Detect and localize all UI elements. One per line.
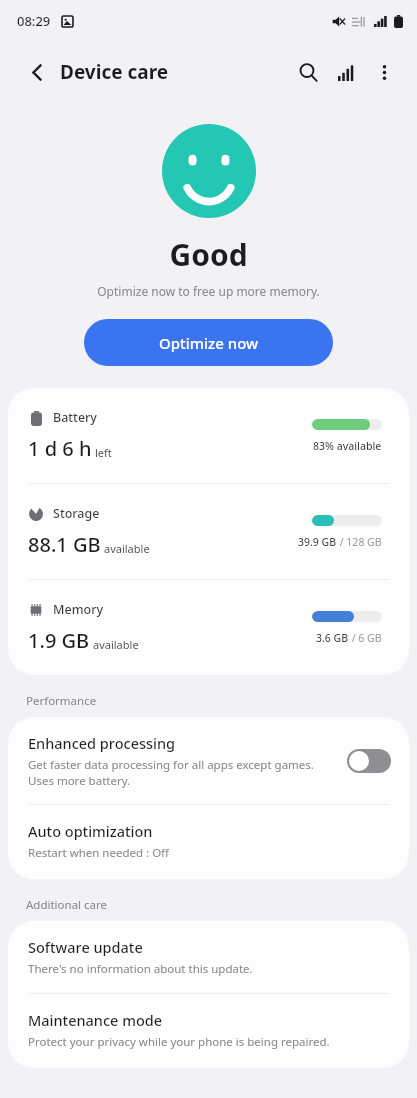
staticText: Maintenance mode xyxy=(28,1010,163,1030)
staticText: Enhanced processing xyxy=(28,733,176,753)
staticText: 83% available xyxy=(313,439,382,453)
staticText: Optimize now to free up more memory. xyxy=(97,283,320,299)
staticText: 88.1 GB xyxy=(28,531,101,558)
button[interactable]: Auto optimization xyxy=(8,805,409,879)
staticText: / 6 GB xyxy=(349,631,382,645)
staticText: 1.9 GB xyxy=(28,627,90,654)
staticText: Battery xyxy=(53,409,97,426)
staticText: left xyxy=(95,445,112,460)
staticText: 39.9 GB xyxy=(298,535,337,549)
button[interactable]: Battery xyxy=(8,388,409,483)
button[interactable]: Back xyxy=(20,55,54,89)
staticText: Memory xyxy=(53,601,104,618)
staticText: available xyxy=(93,637,139,652)
staticText: 3.6 GB xyxy=(316,631,349,645)
button[interactable]: Enhanced processing toggle xyxy=(347,749,391,773)
button[interactable]: Storage xyxy=(8,484,409,579)
staticText: / 128 GB xyxy=(337,535,382,549)
staticText: Storage xyxy=(53,505,100,522)
staticText: Device care xyxy=(60,59,169,85)
button[interactable]: Maintenance mode xyxy=(8,994,409,1068)
staticText: Additional care xyxy=(26,897,108,913)
button[interactable]: Usage statistics xyxy=(327,53,365,91)
staticText: Good xyxy=(169,234,248,275)
button[interactable]: Search xyxy=(289,53,327,91)
button[interactable]: Memory xyxy=(8,580,409,675)
staticText: Get faster data processing for all apps … xyxy=(28,757,314,788)
button[interactable]: Enhanced processing xyxy=(8,717,409,804)
staticText: Restart when needed : Off xyxy=(28,845,170,861)
button[interactable]: Software update xyxy=(8,921,409,993)
staticText: 08:29 xyxy=(17,12,51,30)
staticText: Software update xyxy=(28,937,143,957)
button[interactable]: More options xyxy=(365,53,403,91)
staticText: Performance xyxy=(26,693,97,709)
button[interactable]: Optimize now xyxy=(84,319,333,366)
staticText: 1 d 6 h xyxy=(28,435,92,462)
staticText: Optimize now xyxy=(159,333,259,353)
staticText: There's no information about this update… xyxy=(28,961,253,977)
staticText: Auto optimization xyxy=(28,821,153,841)
staticText: Protect your privacy while your phone is… xyxy=(28,1034,330,1050)
staticText: available xyxy=(104,541,150,556)
